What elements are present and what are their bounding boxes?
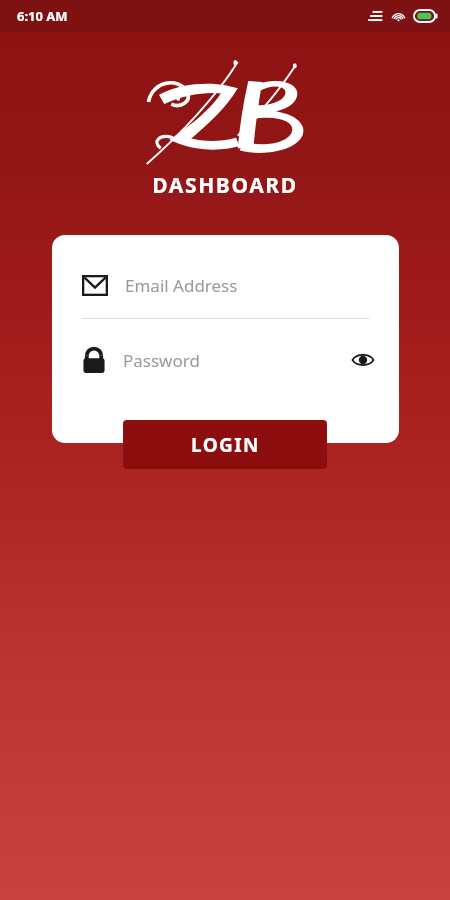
button[interactable]: Password bbox=[52, 339, 399, 381]
button[interactable]: Show password bbox=[349, 346, 377, 374]
staticText: 6:10 AM bbox=[17, 7, 68, 25]
staticText: LOGIN bbox=[191, 432, 260, 458]
staticText: DASHBOARD bbox=[152, 171, 298, 200]
staticText: Email Address bbox=[125, 274, 238, 297]
button[interactable]: Email Address bbox=[52, 265, 399, 305]
button[interactable]: LOGIN bbox=[123, 420, 327, 469]
staticText: Password bbox=[123, 349, 200, 372]
